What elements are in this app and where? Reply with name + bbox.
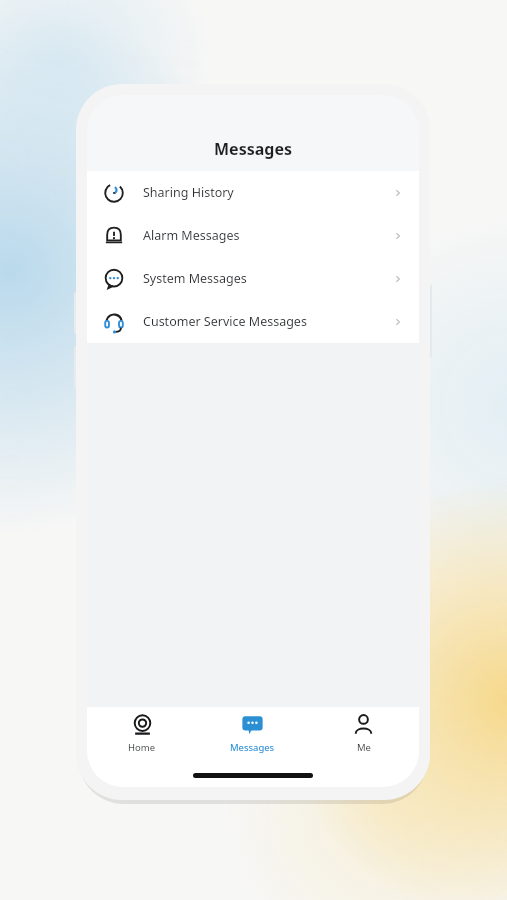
staticText: Messages [230, 741, 275, 754]
staticText: Sharing History [143, 184, 393, 201]
staticText: Alarm Messages [143, 227, 393, 244]
button[interactable]: Home [87, 707, 197, 763]
staticText: Me [357, 741, 371, 754]
button[interactable]: Alarm Messages [87, 214, 419, 257]
staticText: Home [128, 741, 156, 754]
button[interactable]: Messages [197, 707, 308, 763]
staticText: System Messages [143, 270, 393, 287]
button[interactable]: Sharing History [87, 171, 419, 214]
staticText: Customer Service Messages [143, 313, 393, 330]
staticText: Messages [214, 138, 292, 160]
button[interactable]: Me [308, 707, 419, 763]
button[interactable]: Customer Service Messages [87, 300, 419, 343]
button[interactable]: System Messages [87, 257, 419, 300]
